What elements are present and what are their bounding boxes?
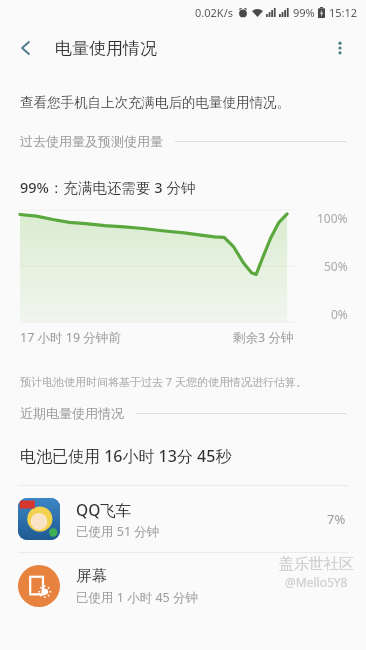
staticText: 电量使用情况 — [55, 38, 157, 59]
staticText: 100% — [317, 210, 348, 226]
staticText: 剩余3 分钟 — [233, 329, 294, 346]
staticText: @Mello5Y8 — [285, 574, 348, 590]
staticText: 已使用 51 分钟 — [76, 523, 160, 540]
staticText: 盖乐世社区 — [279, 555, 354, 574]
button[interactable]: 屏幕 — [0, 553, 366, 619]
staticText: 99% — [293, 5, 315, 20]
staticText: 已使用 1 小时 45 分钟 — [76, 589, 198, 606]
staticText: 过去使用量及预测使用量 — [20, 133, 163, 149]
staticText: 7% — [327, 510, 346, 528]
staticText: 0% — [331, 306, 348, 322]
staticText: 查看您手机自上次充满电后的电量使用情况。 — [20, 94, 290, 111]
staticText: 预计电池使用时间将基于过去 7 天您的使用情况进行估算。 — [20, 374, 308, 389]
staticText: 屏幕 — [76, 566, 107, 586]
staticText: 17 小时 19 分钟前 — [20, 329, 121, 346]
staticText: 电池已使用 16小时 13分 45秒 — [20, 445, 232, 467]
staticText: 0.02K/s — [195, 5, 233, 20]
button[interactable]: QQ飞车 — [0, 486, 366, 552]
button[interactable]: More options — [320, 28, 360, 68]
staticText: 近期电量使用情况 — [20, 405, 124, 421]
staticText: 50% — [324, 258, 348, 274]
button[interactable]: Back — [6, 28, 46, 68]
staticText: QQ飞车 — [76, 499, 132, 520]
staticText: 99%：充满电还需要 3 分钟 — [20, 177, 196, 197]
staticText: 15:12 — [329, 5, 358, 20]
